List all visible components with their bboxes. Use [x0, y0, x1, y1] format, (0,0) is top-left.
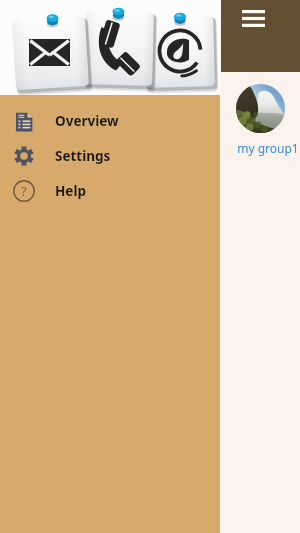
- staticText: ?: [21, 182, 27, 200]
- button[interactable]: Overview: [0, 103, 221, 138]
- button[interactable]: ?: [0, 173, 221, 208]
- staticText: Help: [55, 182, 86, 200]
- staticText: Settings: [55, 147, 111, 165]
- button[interactable]: Settings: [0, 138, 221, 173]
- button[interactable]: Open navigation menu: [221, 0, 300, 72]
- staticText: Overview: [55, 112, 119, 130]
- staticText: my group1: [237, 140, 299, 156]
- button[interactable]: my group1: [221, 84, 300, 156]
